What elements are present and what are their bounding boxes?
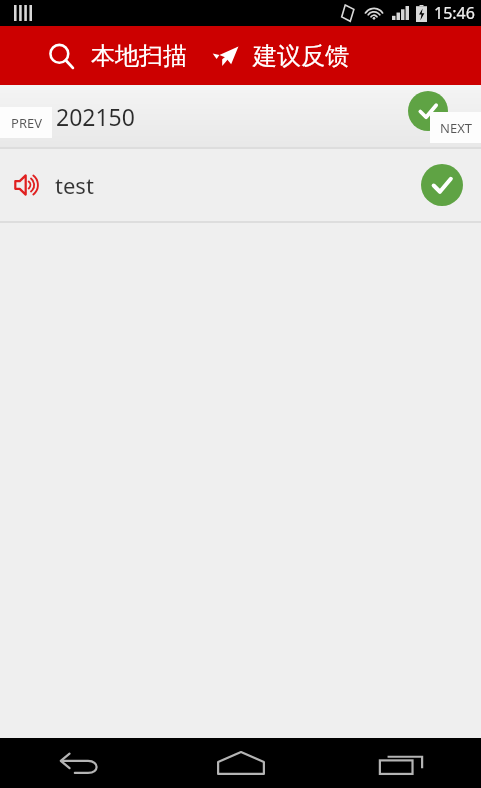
button[interactable]: Recent apps xyxy=(321,738,481,788)
staticText: NEXT xyxy=(440,119,472,137)
other: Search xyxy=(48,43,75,70)
staticText: 15:46 xyxy=(434,2,475,24)
button[interactable]: Send feedback xyxy=(205,33,355,79)
button[interactable]: PREV xyxy=(0,107,52,138)
button[interactable]: Done xyxy=(421,164,463,206)
button[interactable]: Confirm xyxy=(408,91,448,131)
staticText: PREV xyxy=(11,114,42,132)
other: Send feedback xyxy=(211,44,239,68)
staticText: 建议反馈 xyxy=(253,41,349,71)
button[interactable]: Search xyxy=(0,33,195,79)
button[interactable]: Back xyxy=(0,738,161,788)
staticText: 本地扫描 xyxy=(91,41,187,71)
other: Play sound xyxy=(14,173,40,197)
button[interactable]: Play sound xyxy=(0,149,481,221)
staticText: test xyxy=(55,170,94,200)
button[interactable]: Home xyxy=(161,738,321,788)
staticText: 202150 xyxy=(56,101,135,132)
button[interactable]: NEXT xyxy=(430,112,481,143)
